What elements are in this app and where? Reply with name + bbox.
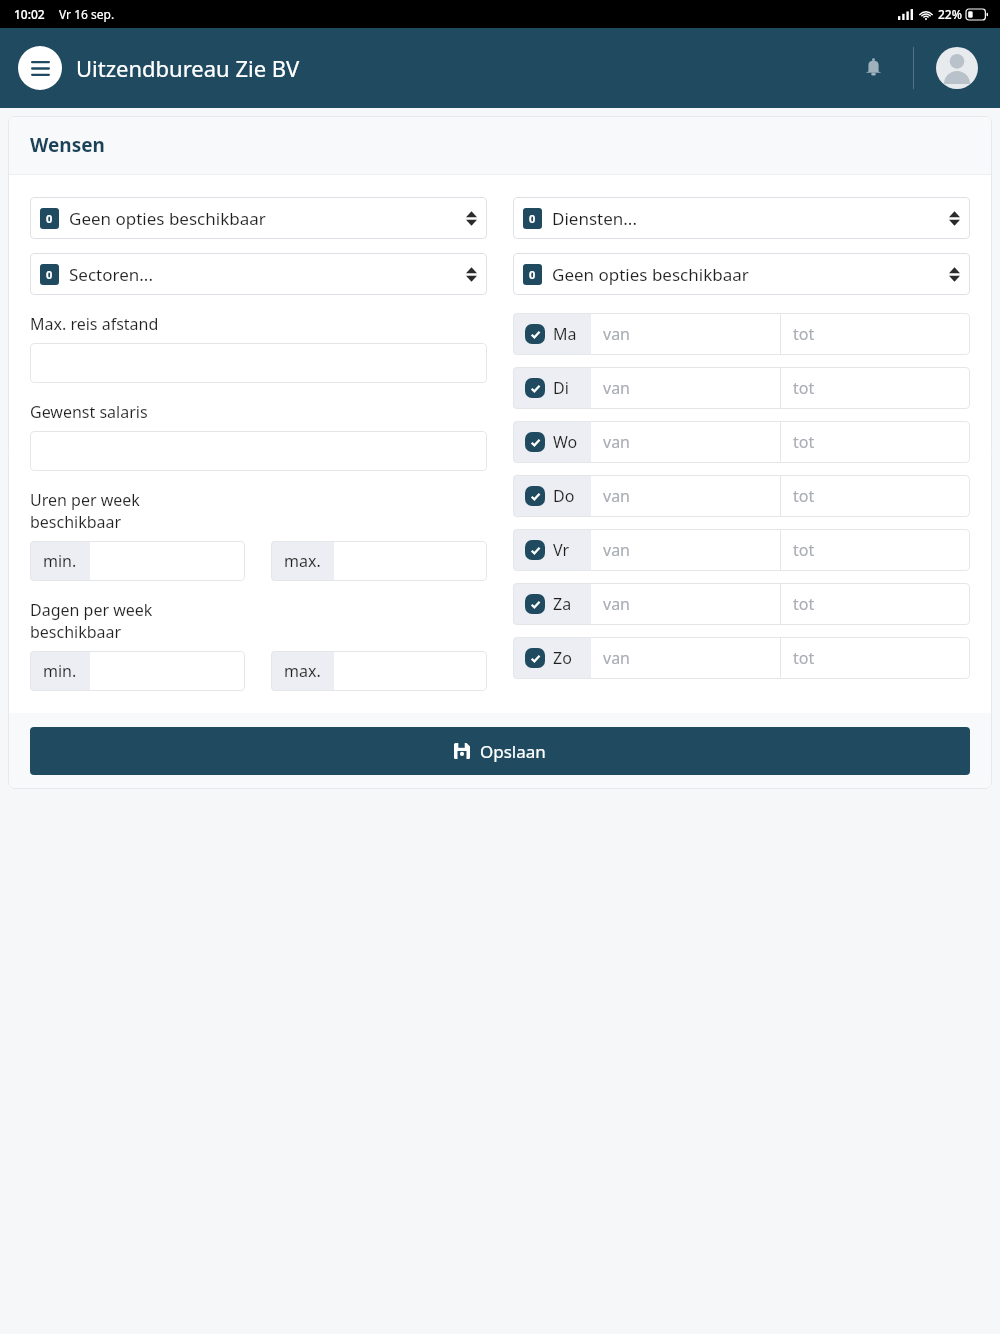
staticText: Wo [553, 431, 578, 453]
staticText: van [603, 431, 630, 453]
button[interactable]: 0 [30, 197, 487, 239]
staticText: Sectoren... [69, 263, 153, 286]
staticText: Za [553, 593, 572, 615]
staticText: van [603, 593, 630, 615]
staticText: Dagen per week [30, 599, 153, 621]
staticText: 0 [46, 211, 53, 226]
button[interactable]: Zo [513, 637, 970, 679]
staticText: 0 [46, 267, 53, 282]
staticText: Uitzendbureau Zie BV [76, 53, 300, 83]
staticText: beschikbaar [30, 621, 122, 643]
button[interactable]: min. [30, 541, 245, 581]
staticText: tot [793, 539, 815, 561]
button[interactable]: 0 [513, 253, 970, 295]
staticText: Zo [553, 647, 572, 669]
button[interactable]: Ma [513, 313, 970, 355]
staticText: 0 [529, 267, 536, 282]
staticText: Max. reis afstand [30, 313, 159, 335]
staticText: tot [793, 593, 815, 615]
staticText: van [603, 539, 630, 561]
staticText: max. [284, 660, 321, 682]
staticText: tot [793, 323, 815, 345]
staticText: max. [284, 550, 321, 572]
button[interactable]: Vr [513, 529, 970, 571]
staticText: van [603, 485, 630, 507]
staticText: 22% [938, 6, 962, 22]
staticText: van [603, 377, 630, 399]
staticText: Diensten... [552, 207, 637, 230]
button[interactable]: max. [271, 651, 487, 691]
staticText: Geen opties beschikbaar [69, 207, 266, 230]
button[interactable]: Do [513, 475, 970, 517]
staticText: Do [553, 485, 575, 507]
button[interactable]: Di [513, 367, 970, 409]
staticText: Vr [553, 539, 570, 561]
button[interactable]: min. [30, 651, 245, 691]
button[interactable]: Menu [18, 46, 62, 90]
staticText: 0 [529, 211, 536, 226]
button[interactable]: 0 [513, 197, 970, 239]
staticText: Opslaan [480, 740, 546, 763]
staticText: tot [793, 377, 815, 399]
staticText: min. [43, 660, 77, 682]
staticText: Di [553, 377, 569, 399]
staticText: min. [43, 550, 77, 572]
staticText: Ma [553, 323, 577, 345]
staticText: van [603, 647, 630, 669]
button[interactable]: Account [936, 47, 978, 89]
staticText: tot [793, 485, 815, 507]
staticText: Vr 16 sep. [59, 6, 115, 22]
staticText: 10:02 [14, 6, 45, 22]
staticText: van [603, 323, 630, 345]
button[interactable]: 0 [30, 253, 487, 295]
staticText: beschikbaar [30, 511, 122, 533]
staticText: tot [793, 647, 815, 669]
staticText: Gewenst salaris [30, 401, 148, 423]
button[interactable]: Wo [513, 421, 970, 463]
staticText: Geen opties beschikbaar [552, 263, 749, 286]
staticText: Wensen [30, 132, 105, 158]
button[interactable]: Input field [30, 343, 487, 383]
button[interactable]: Opslaan [30, 727, 970, 775]
button[interactable]: Notifications [851, 46, 895, 90]
button[interactable]: max. [271, 541, 487, 581]
button[interactable]: Za [513, 583, 970, 625]
staticText: tot [793, 431, 815, 453]
staticText: Uren per week [30, 489, 140, 511]
button[interactable]: Input field [30, 431, 487, 471]
